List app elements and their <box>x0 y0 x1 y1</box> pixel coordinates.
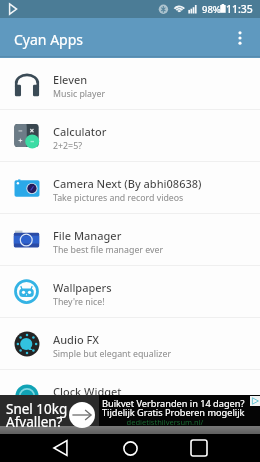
staticText: Clock Widget <box>53 384 122 399</box>
staticText: Music player <box>53 88 106 100</box>
button[interactable]: Audio FX <box>0 318 260 369</box>
staticText: dedietisthilversum.nl/ <box>102 417 228 427</box>
staticText: File Manager <box>53 228 122 243</box>
staticText: 2+2=5? <box>53 140 82 152</box>
button[interactable]: Back <box>45 434 77 462</box>
staticText: Take pictures and record videos <box>53 192 184 204</box>
staticText: 98% <box>202 3 221 16</box>
button[interactable]: Recent apps <box>183 434 215 462</box>
button[interactable]: Buikvet Verbranden in 14 dagen? <box>99 395 260 426</box>
button[interactable]: Eleven <box>0 58 260 109</box>
staticText: Simple but elegant equalizer <box>53 348 172 360</box>
button[interactable]: Clock Widget <box>0 370 260 421</box>
staticText: Buikvet Verbranden in 14 dagen? <box>102 397 245 410</box>
staticText: Cyan Apps <box>14 30 84 49</box>
staticText: They're nice! <box>53 296 105 308</box>
staticText: Afvallen? <box>6 413 63 431</box>
button[interactable]: More options <box>220 18 260 58</box>
staticText: The best file manager ever <box>53 244 164 256</box>
button[interactable]: Wallpapers <box>0 266 260 317</box>
button[interactable]: Home <box>114 434 146 462</box>
staticText: A nice clock widget <box>53 400 132 412</box>
staticText: Snel 10kg <box>6 400 68 418</box>
staticText: Audio FX <box>53 332 100 347</box>
staticText: Camera Next (By abhi08638) <box>53 176 202 191</box>
staticText: Tijdelijk Gratis Proberen mogelijk <box>102 406 245 419</box>
button[interactable]: Snel 10kg <box>0 395 99 426</box>
staticText: Eleven <box>53 72 88 87</box>
staticText: 11:35 <box>226 2 253 16</box>
button[interactable]: File Manager <box>0 214 260 265</box>
staticText: Calculator <box>53 124 107 139</box>
button[interactable]: Calculator <box>0 110 260 161</box>
button[interactable]: Camera Next (By abhi08638) <box>0 162 260 213</box>
staticText: Wallpapers <box>53 280 112 295</box>
